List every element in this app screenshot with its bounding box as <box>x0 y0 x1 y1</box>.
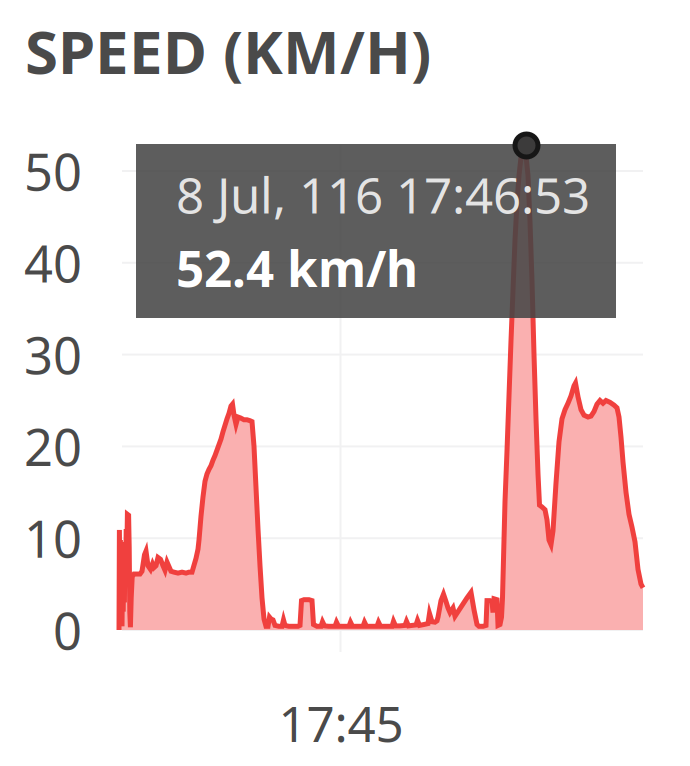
staticText: 50 <box>24 137 82 205</box>
staticText: 30 <box>24 321 82 388</box>
staticText: 17:45 <box>278 690 403 755</box>
staticText: 52.4 km/h <box>176 235 418 300</box>
staticText: 8 Jul, 116 17:46:53 <box>176 161 590 227</box>
staticText: 0 <box>53 596 82 664</box>
staticText: 40 <box>24 229 82 296</box>
staticText: 20 <box>24 413 82 480</box>
staticText: SPEED (KM/H) <box>25 11 431 91</box>
button[interactable]: Speed chart, peak 52.4 kilometres per ho… <box>0 0 690 766</box>
staticText: 10 <box>24 505 82 572</box>
